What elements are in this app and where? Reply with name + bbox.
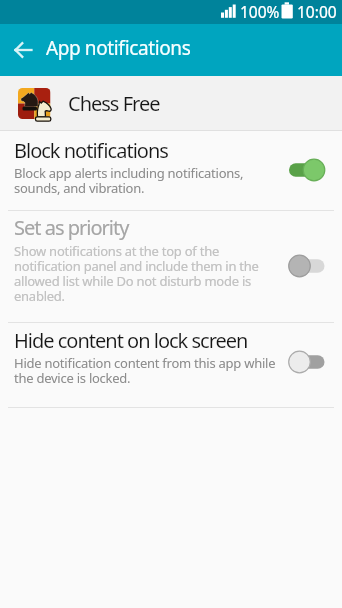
staticText: Hide notification content from this app … [14,354,276,387]
staticText: 100% [240,1,280,22]
button[interactable] [286,253,328,279]
button[interactable] [286,157,328,183]
staticText: App notifications [46,35,191,61]
button[interactable]: Hide content on lock screen [0,323,342,407]
button[interactable] [8,36,40,64]
button[interactable]: Set as priority [0,211,342,322]
button[interactable]: Chess Free [0,76,342,130]
staticText: Block app alerts including notifications… [14,164,244,197]
staticText: Set as priority [14,214,129,241]
button[interactable]: Block notifications [0,131,342,210]
staticText: Show notifications at the top of the not… [14,242,259,305]
staticText: Block notifications [14,137,168,164]
staticText: 10:00 [297,1,337,22]
staticText: Chess Free [68,90,160,117]
staticText: Hide content on lock screen [14,327,248,354]
button[interactable] [286,349,328,375]
